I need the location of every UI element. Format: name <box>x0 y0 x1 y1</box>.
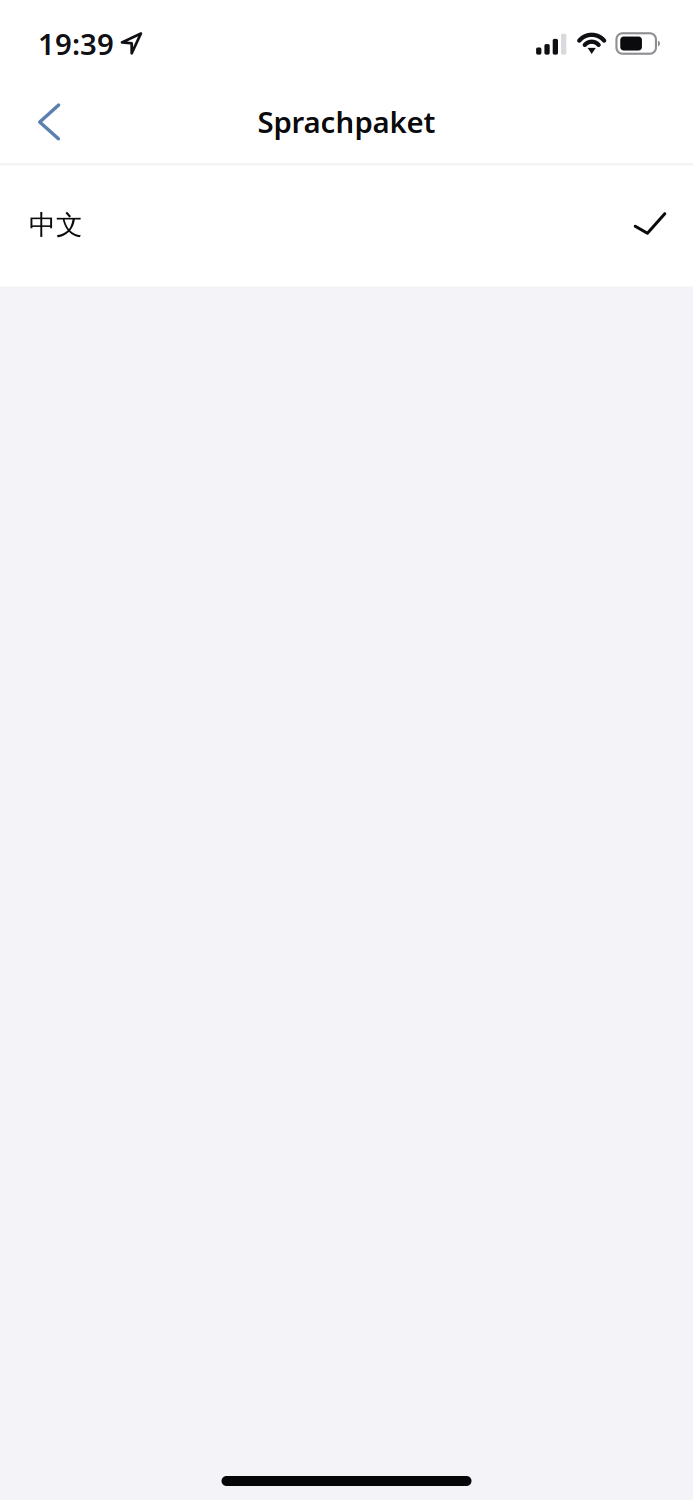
staticText: Sprachpaket <box>257 102 435 141</box>
button[interactable]: 中文 <box>0 165 693 286</box>
staticText: 中文 <box>29 209 83 241</box>
staticText: 19:39 <box>38 24 114 63</box>
button[interactable]: Back <box>0 91 85 159</box>
